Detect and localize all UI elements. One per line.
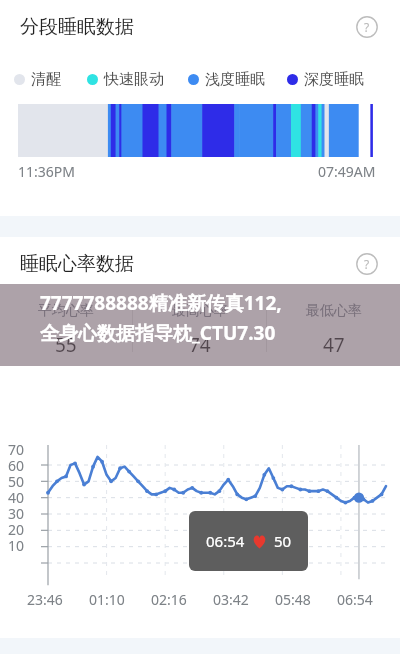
staticText: 30 [8, 504, 25, 520]
staticText: 10 [8, 536, 25, 552]
staticText: 40 [8, 488, 25, 504]
staticText: 01:10 [89, 590, 125, 609]
staticText: 11:36PM [18, 162, 75, 181]
button[interactable]: 深度睡眠 [287, 70, 364, 89]
staticText: 分段睡眠数据 [20, 15, 134, 39]
button[interactable]: 06:54 [189, 511, 308, 571]
button[interactable]: Help [350, 247, 384, 281]
staticText: 02:16 [151, 590, 187, 609]
staticText: 23:46 [27, 590, 63, 609]
staticText: 06:54 [206, 531, 245, 551]
button[interactable]: 最低心率 [267, 302, 400, 358]
staticText: 清醒 [31, 70, 61, 89]
staticText: 47 [323, 332, 345, 358]
staticText: 03:42 [213, 590, 249, 609]
button[interactable]: 清醒 [14, 70, 61, 89]
staticText: 最低心率 [306, 302, 362, 320]
staticText: 50 [274, 531, 292, 551]
staticText: 07:49AM [318, 162, 376, 181]
staticText: 睡眠心率数据 [20, 252, 134, 276]
staticText: 平均心率 [38, 302, 94, 320]
staticText: 06:54 [337, 590, 373, 609]
staticText: 深度睡眠 [304, 70, 364, 89]
button[interactable]: Help [350, 10, 384, 44]
staticText: 74 [189, 332, 211, 358]
staticText: 50 [8, 472, 25, 488]
staticText: 最高心率 [172, 302, 228, 320]
staticText: 全身心数据指导枕_CTU7.30 [40, 320, 276, 346]
staticText: 55 [55, 332, 77, 358]
staticText: 05:48 [275, 590, 311, 609]
staticText: 7777788888精准新传真112, [40, 290, 282, 316]
staticText: ? [364, 19, 370, 35]
staticText: 20 [8, 520, 25, 536]
staticText: 快速眼动 [104, 70, 164, 89]
button[interactable]: 分段睡眠数据 [0, 0, 400, 54]
staticText: 浅度睡眠 [205, 70, 265, 89]
staticText: 70 [8, 440, 25, 456]
staticText: 60 [8, 456, 25, 472]
staticText: ? [364, 256, 370, 272]
button[interactable]: 浅度睡眠 [188, 70, 265, 89]
button[interactable]: 平均心率 [0, 302, 132, 358]
button[interactable]: 快速眼动 [87, 70, 164, 89]
button[interactable]: 睡眠心率数据 [0, 237, 400, 291]
button[interactable]: 最高心率 [133, 302, 266, 358]
